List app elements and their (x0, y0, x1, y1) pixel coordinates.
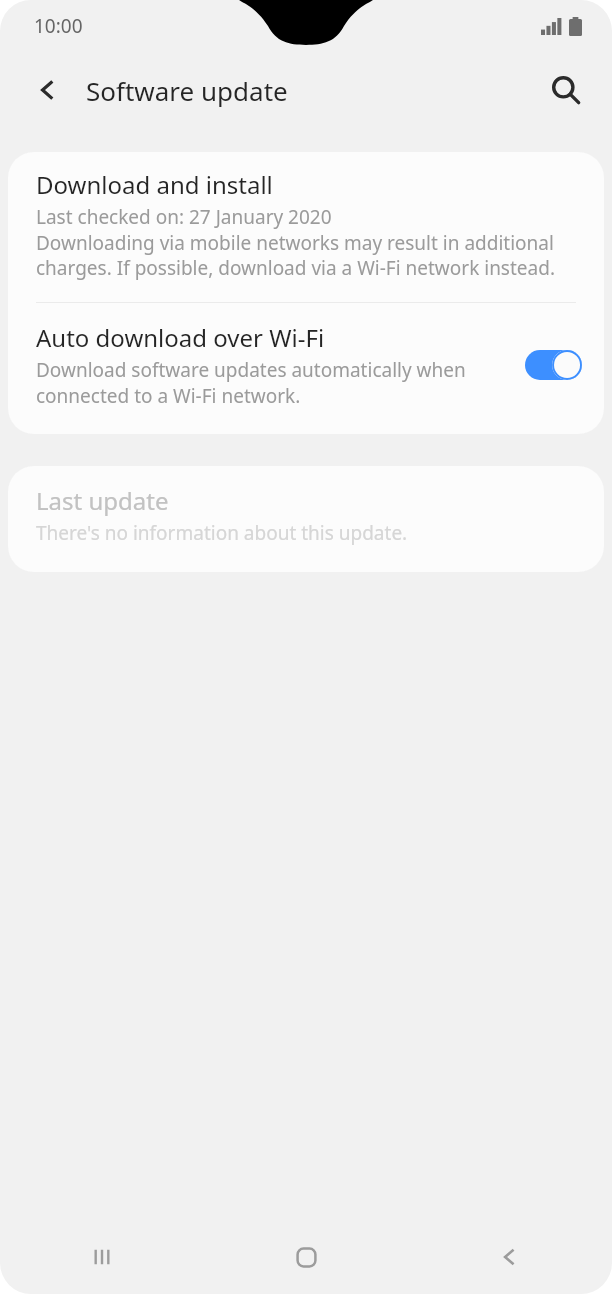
button[interactable]: Search (536, 60, 596, 120)
button[interactable]: Recent apps (0, 1220, 204, 1294)
staticText: There's no information about this update… (36, 520, 408, 546)
staticText: Last checked on: 27 January 2020 Downloa… (36, 204, 578, 280)
button[interactable]: Auto download over Wi-Fi, on (525, 348, 582, 382)
button[interactable]: Back (408, 1220, 612, 1294)
button[interactable]: Home (204, 1220, 408, 1294)
staticText: Download software updates automatically … (36, 357, 519, 408)
staticText: Auto download over Wi-Fi (36, 321, 325, 354)
button[interactable]: Last update (8, 466, 604, 572)
staticText: 10:00 (34, 13, 83, 39)
button[interactable]: Auto download over Wi-Fi (8, 303, 604, 434)
button[interactable]: Download and install (8, 152, 604, 302)
staticText: Download and install (36, 168, 273, 201)
button[interactable]: Back (20, 62, 76, 118)
staticText: Last update (36, 484, 169, 517)
staticText: Software update (86, 73, 288, 108)
